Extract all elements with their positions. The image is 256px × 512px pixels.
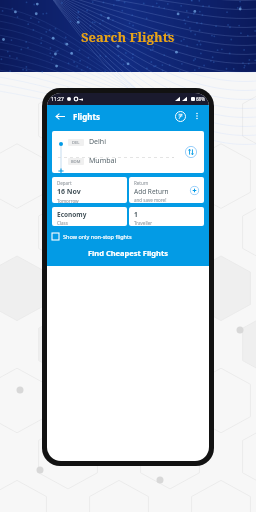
staticText: 11:27 bbox=[51, 96, 64, 103]
button[interactable]: Return bbox=[129, 177, 204, 203]
button[interactable]: Find Cheapest Flights bbox=[52, 244, 204, 262]
button[interactable]: More options bbox=[191, 110, 203, 122]
staticText: Class bbox=[57, 220, 68, 226]
staticText: DEL bbox=[72, 140, 80, 145]
button[interactable]: Depart bbox=[52, 177, 127, 203]
staticText: Tomorrow bbox=[57, 198, 79, 203]
staticText: Depart bbox=[57, 180, 72, 186]
staticText: 1 bbox=[134, 210, 138, 219]
staticText: Show only non-stop flights bbox=[63, 233, 132, 240]
button[interactable]: DEL bbox=[52, 131, 204, 173]
button[interactable]: Currency bbox=[172, 108, 188, 124]
staticText: Economy bbox=[57, 210, 87, 219]
button[interactable]: 1 bbox=[129, 207, 204, 226]
button[interactable]: Show only non-stop flights bbox=[52, 230, 204, 242]
staticText: Add Return bbox=[134, 187, 169, 196]
staticText: and save more! bbox=[134, 197, 167, 203]
staticText: Find Cheapest Flights bbox=[88, 248, 169, 258]
staticText: 16 Nov bbox=[57, 187, 81, 197]
staticText: Mumbai bbox=[89, 156, 117, 166]
staticText: Flights bbox=[73, 111, 100, 122]
staticText: 68% bbox=[196, 96, 205, 102]
staticText: BOM bbox=[71, 159, 81, 164]
staticText: Delhi bbox=[89, 137, 106, 147]
staticText: Traveller bbox=[134, 220, 153, 226]
staticText: Return bbox=[134, 180, 149, 186]
staticText: Search Flights bbox=[81, 28, 175, 46]
button[interactable]: Economy bbox=[52, 207, 127, 226]
button[interactable]: Back bbox=[53, 109, 67, 123]
button[interactable]: Swap bbox=[184, 145, 198, 159]
